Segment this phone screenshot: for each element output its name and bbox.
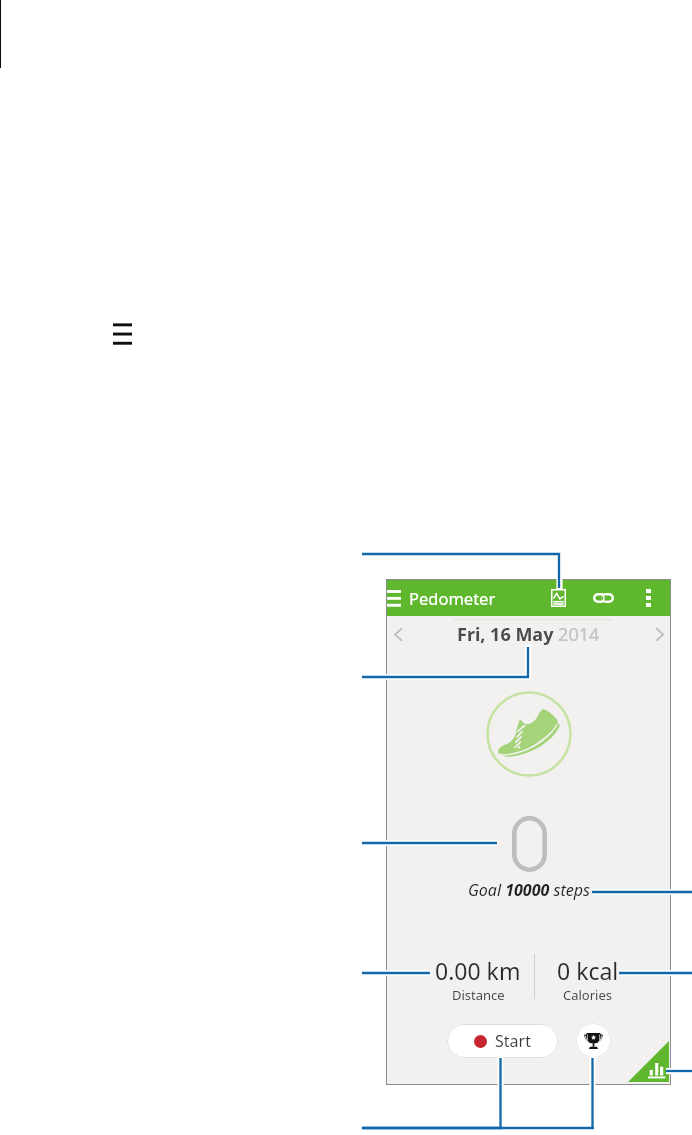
button[interactable]: Menu [387,580,409,616]
staticText: Distance [452,986,505,1004]
staticText: Pedometer [409,587,496,609]
staticText: Goal 10000 steps [468,879,590,901]
staticText: 0.00 km [435,955,521,986]
button[interactable]: Link to Gear [585,580,622,616]
button[interactable]: Start [447,1024,558,1058]
button[interactable]: More options [632,580,664,616]
button[interactable]: Statistics [628,1041,669,1082]
button[interactable]: Achievements [576,1023,611,1058]
staticText: Start [495,1030,531,1052]
button[interactable]: Report [540,580,577,616]
button[interactable]: Previous day [387,616,409,653]
button[interactable]: Next day [648,616,670,653]
staticText: Calories [563,986,613,1004]
staticText: 0 kcal [557,955,619,986]
staticText: Fri, 16 May 2014 [457,622,600,647]
